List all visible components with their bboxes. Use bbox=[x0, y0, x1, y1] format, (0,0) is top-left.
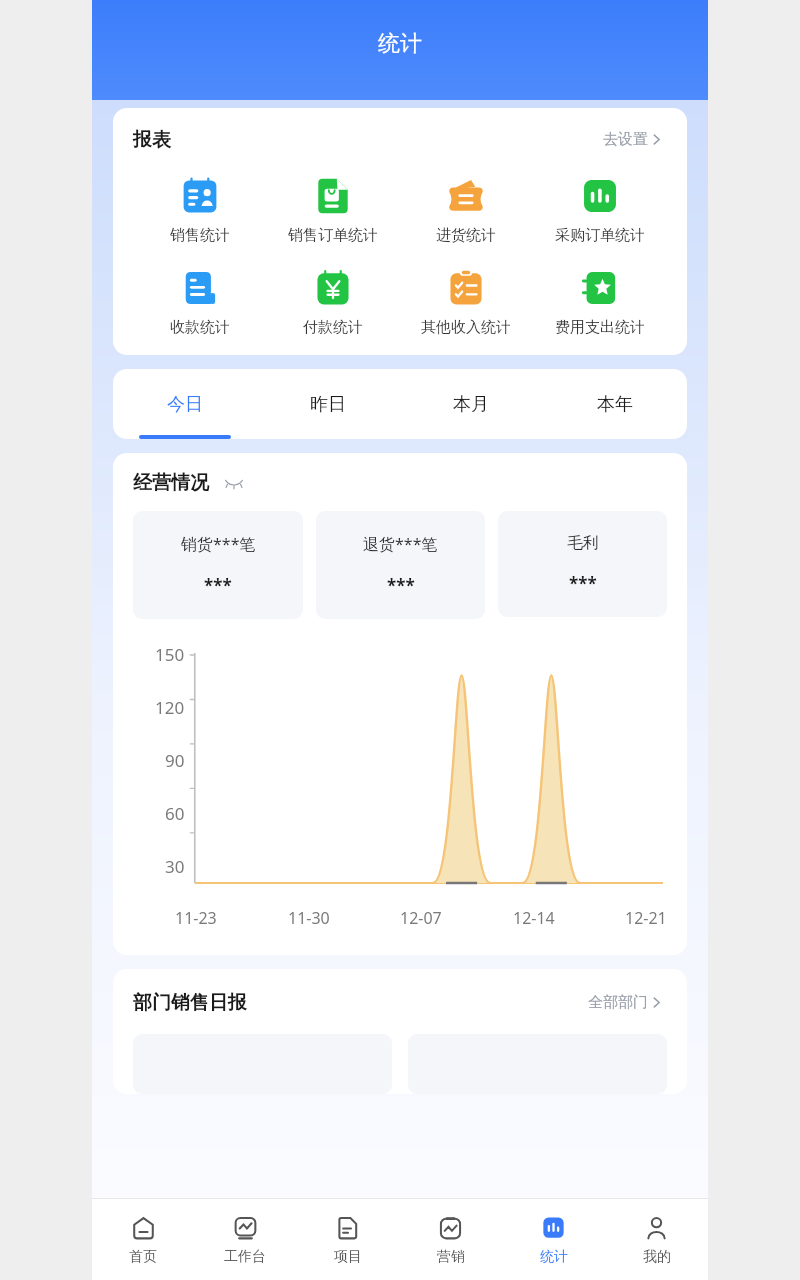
button[interactable]: 我的 bbox=[605, 1199, 708, 1280]
staticText: 11-23 bbox=[175, 907, 217, 929]
button[interactable]: 退货***笔 bbox=[316, 511, 485, 619]
staticText: 销售订单统计 bbox=[288, 226, 378, 245]
button[interactable]: 其他收入统计 bbox=[399, 267, 533, 337]
button[interactable]: 采购订单统计 bbox=[533, 175, 667, 245]
button[interactable]: 收款统计 bbox=[133, 267, 266, 337]
button[interactable]: 全部部门 bbox=[584, 989, 667, 1016]
button[interactable]: 昨日 bbox=[256, 369, 399, 439]
button[interactable]: 首页 bbox=[92, 1199, 194, 1280]
staticText: 30 bbox=[165, 855, 185, 878]
button[interactable]: 工作台 bbox=[194, 1199, 296, 1280]
staticText: 销售统计 bbox=[170, 226, 230, 245]
button[interactable]: Toggle visibility bbox=[223, 472, 245, 494]
staticText: 项目 bbox=[334, 1248, 362, 1266]
staticText: *** bbox=[387, 574, 415, 597]
staticText: 部门销售日报 bbox=[133, 991, 247, 1015]
staticText: 60 bbox=[165, 802, 185, 825]
staticText: 去设置 bbox=[603, 130, 648, 149]
staticText: 11-30 bbox=[288, 907, 330, 929]
staticText: 12-14 bbox=[513, 907, 555, 929]
staticText: 退货***笔 bbox=[363, 533, 438, 555]
staticText: 150 bbox=[155, 643, 185, 666]
button[interactable]: 去设置 bbox=[599, 126, 667, 153]
button[interactable]: 销货***笔 bbox=[133, 511, 303, 619]
staticText: 全部部门 bbox=[588, 993, 648, 1012]
staticText: 首页 bbox=[129, 1248, 157, 1266]
staticText: 报表 bbox=[133, 128, 171, 152]
button[interactable]: 营销 bbox=[399, 1199, 502, 1280]
button[interactable]: 费用支出统计 bbox=[533, 267, 667, 337]
staticText: 今日 bbox=[167, 393, 203, 416]
staticText: 经营情况 bbox=[133, 471, 209, 495]
staticText: 其他收入统计 bbox=[421, 318, 511, 337]
staticText: 12-21 bbox=[625, 907, 667, 929]
staticText: 销货***笔 bbox=[181, 533, 256, 555]
button[interactable]: 进货统计 bbox=[399, 175, 533, 245]
staticText: 本月 bbox=[453, 393, 489, 416]
staticText: 营销 bbox=[437, 1248, 465, 1266]
staticText: 12-07 bbox=[400, 907, 442, 929]
staticText: 收款统计 bbox=[170, 318, 230, 337]
staticText: 统计 bbox=[378, 30, 422, 58]
staticText: 毛利 bbox=[567, 533, 599, 553]
button[interactable]: 销售订单统计 bbox=[266, 175, 399, 245]
button[interactable]: 统计 bbox=[502, 1199, 605, 1280]
button[interactable]: 今日 bbox=[113, 369, 256, 439]
staticText: 采购订单统计 bbox=[555, 226, 645, 245]
button[interactable]: 销售统计 bbox=[133, 175, 266, 245]
staticText: 工作台 bbox=[224, 1248, 266, 1266]
staticText: 我的 bbox=[643, 1248, 671, 1266]
staticText: 90 bbox=[165, 749, 185, 772]
staticText: 本年 bbox=[597, 393, 633, 416]
button[interactable]: 项目 bbox=[296, 1199, 399, 1280]
staticText: *** bbox=[569, 572, 597, 595]
staticText: 昨日 bbox=[310, 393, 346, 416]
staticText: 120 bbox=[155, 696, 185, 719]
staticText: *** bbox=[204, 574, 232, 597]
staticText: 付款统计 bbox=[303, 318, 363, 337]
staticText: 费用支出统计 bbox=[555, 318, 645, 337]
staticText: 统计 bbox=[540, 1248, 568, 1266]
button[interactable]: 毛利 bbox=[498, 511, 667, 617]
button[interactable]: 本月 bbox=[399, 369, 543, 439]
button[interactable]: 本年 bbox=[543, 369, 687, 439]
button[interactable]: 付款统计 bbox=[266, 267, 399, 337]
staticText: 进货统计 bbox=[436, 226, 496, 245]
